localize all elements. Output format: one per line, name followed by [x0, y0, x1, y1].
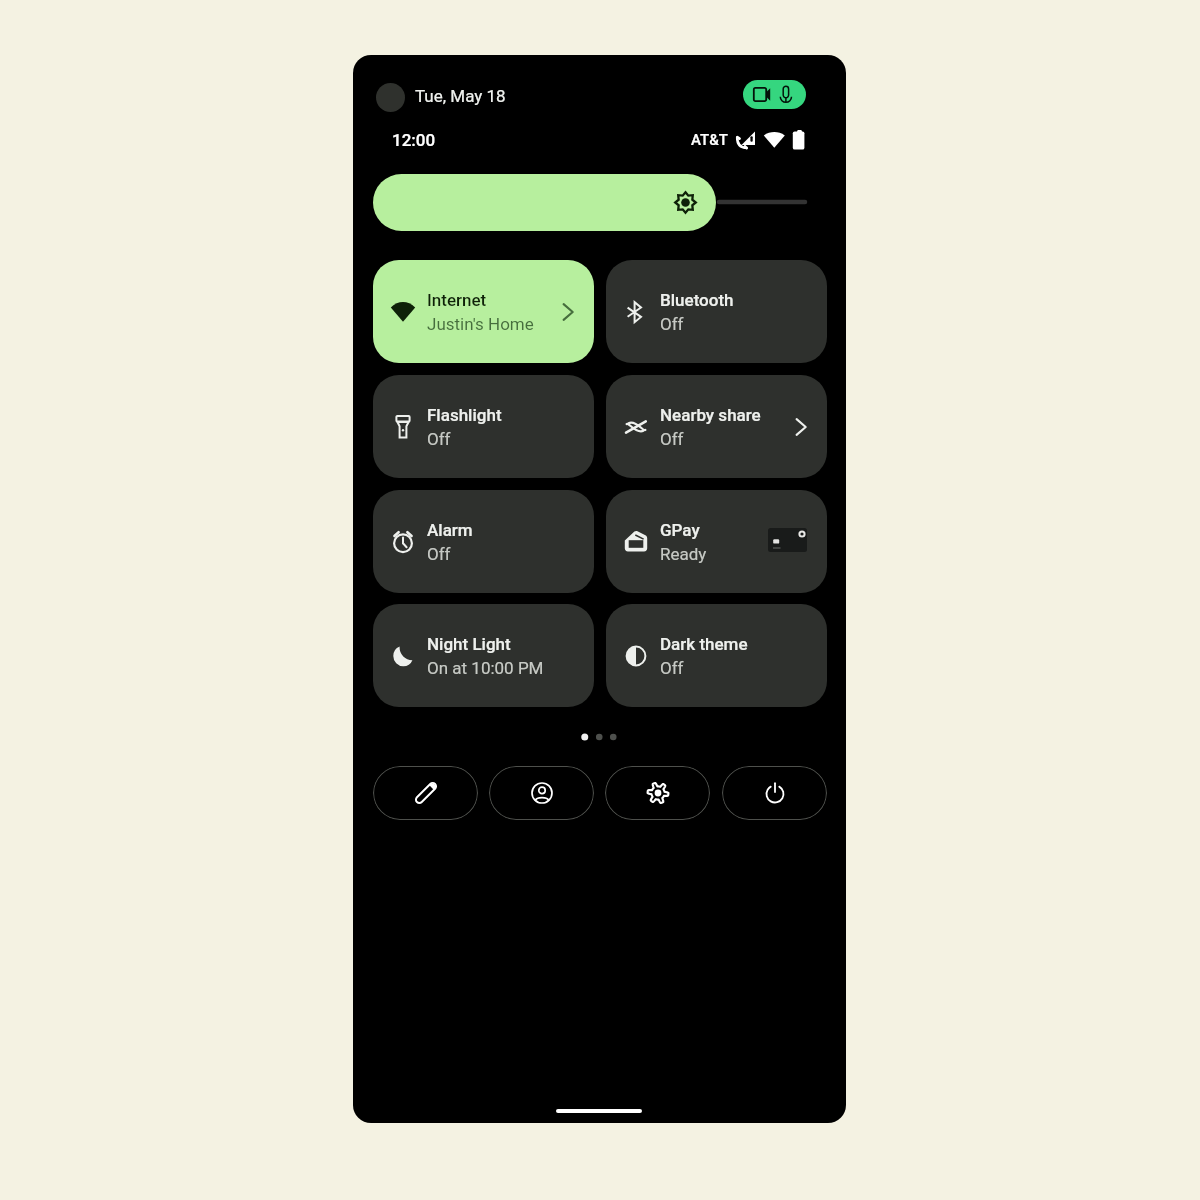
button[interactable]: Night Light	[373, 604, 594, 707]
button[interactable]: Edit	[373, 766, 478, 820]
staticText: Tue, May 18	[415, 86, 506, 106]
button[interactable]: User	[489, 766, 594, 820]
button[interactable]: Alarm	[373, 490, 594, 593]
button[interactable]: Nearby share	[606, 375, 827, 478]
staticText: Off	[660, 429, 684, 449]
staticText: Alarm	[427, 520, 473, 540]
button[interactable]: Internet	[373, 260, 594, 363]
button[interactable]: Flashlight	[373, 375, 594, 478]
staticText: Dark theme	[660, 634, 748, 654]
button[interactable]: Settings	[605, 766, 710, 820]
staticText: Bluetooth	[660, 290, 734, 310]
staticText: Off	[427, 544, 451, 564]
staticText: Justin's Home	[427, 314, 534, 334]
staticText: Night Light	[427, 634, 511, 654]
button[interactable]: Camera and microphone in use	[743, 80, 806, 109]
staticText: Flashlight	[427, 405, 502, 425]
staticText: Off	[427, 429, 451, 449]
button[interactable]: Bluetooth	[606, 260, 827, 363]
staticText: Off	[660, 658, 684, 678]
button[interactable]: Dark theme	[606, 604, 827, 707]
staticText: GPay	[660, 520, 700, 540]
staticText: On at 10:00 PM	[427, 658, 544, 678]
button[interactable]: Brightness	[373, 174, 716, 231]
staticText: Ready	[660, 544, 707, 564]
staticText: 12:00	[392, 130, 436, 150]
button[interactable]: Power	[722, 766, 827, 820]
staticText: Internet	[427, 290, 487, 310]
staticText: Off	[660, 314, 684, 334]
staticText: Nearby share	[660, 405, 761, 425]
staticText: AT&T	[691, 131, 728, 149]
button[interactable]: GPay	[606, 490, 827, 593]
button[interactable]: Account	[376, 83, 405, 112]
